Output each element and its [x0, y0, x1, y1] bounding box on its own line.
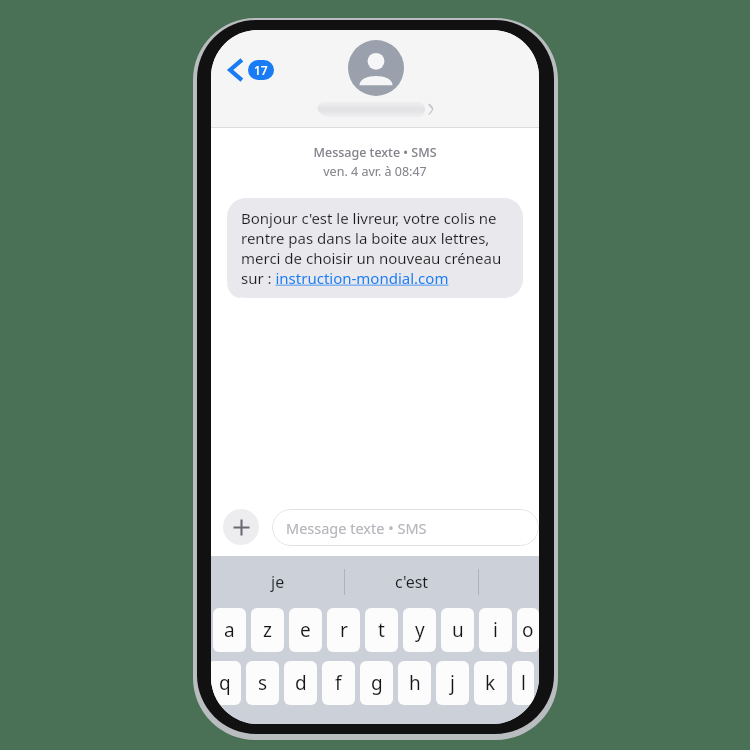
staticText: e: [300, 617, 311, 643]
staticText: t: [378, 617, 385, 643]
staticText: l: [521, 670, 526, 696]
button[interactable]: g: [360, 661, 393, 705]
staticText: q: [219, 670, 231, 696]
button[interactable]: Contact: [317, 40, 434, 117]
staticText: j: [450, 670, 455, 696]
staticText: c'est: [395, 571, 429, 593]
button[interactable]: Bonjour c'est le livreur, votre colis ne…: [227, 198, 523, 298]
button[interactable]: l: [512, 661, 534, 705]
button[interactable]: e: [289, 608, 322, 652]
button[interactable]: Ajouter une pièce jointe: [223, 509, 259, 545]
staticText: y: [415, 617, 425, 643]
staticText: k: [485, 670, 496, 696]
button[interactable]: r: [327, 608, 360, 652]
staticText: Message texte • SMS: [286, 518, 427, 538]
staticText: 17: [254, 62, 268, 78]
button[interactable]: t: [365, 608, 398, 652]
staticText: i: [493, 617, 498, 643]
button[interactable]: z: [251, 608, 284, 652]
button[interactable]: o: [517, 608, 539, 652]
button[interactable]: c'est: [345, 556, 478, 608]
staticText: o: [522, 617, 534, 643]
button[interactable]: a: [213, 608, 246, 652]
button[interactable]: f: [322, 661, 355, 705]
button[interactable]: k: [474, 661, 507, 705]
staticText: a: [224, 617, 235, 643]
staticText: h: [409, 670, 421, 696]
button[interactable]: y: [403, 608, 436, 652]
staticText: u: [452, 617, 464, 643]
button[interactable]: Message texte • SMS: [272, 509, 539, 546]
button[interactable]: j: [436, 661, 469, 705]
button[interactable]: s: [246, 661, 279, 705]
button[interactable]: d: [284, 661, 317, 705]
staticText: f: [335, 670, 342, 696]
button[interactable]: i: [479, 608, 512, 652]
button[interactable]: h: [398, 661, 431, 705]
button[interactable]: je: [211, 556, 344, 608]
staticText: Message texte • SMS: [211, 144, 539, 161]
staticText: z: [263, 617, 272, 643]
staticText: ven. 4 avr. à 08:47: [211, 163, 539, 180]
button[interactable]: q: [211, 661, 241, 705]
button[interactable]: u: [441, 608, 474, 652]
staticText: d: [295, 670, 307, 696]
staticText: s: [258, 670, 268, 696]
staticText: je: [271, 571, 285, 593]
staticText: r: [340, 617, 348, 643]
staticText: Bonjour c'est le livreur, votre colis ne…: [241, 208, 509, 288]
button[interactable]: Retour, 17 non lus: [223, 54, 280, 86]
staticText: g: [371, 670, 383, 696]
